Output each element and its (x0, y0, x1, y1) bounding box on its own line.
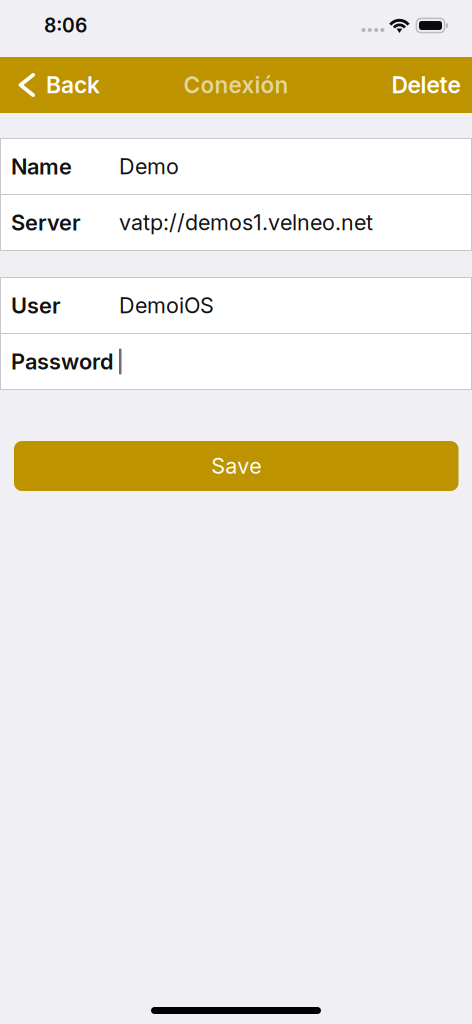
staticText: Server (11, 209, 81, 236)
button[interactable]: Save (14, 441, 458, 491)
button[interactable]: Name (0, 139, 472, 194)
staticText: Name (11, 153, 72, 180)
staticText: Demo (119, 153, 179, 179)
button[interactable]: Back (0, 57, 112, 113)
staticText: DemoiOS (119, 292, 214, 318)
staticText: Password (11, 348, 114, 375)
staticText: vatp://demos1.velneo.net (119, 209, 373, 235)
staticText: User (11, 292, 61, 319)
staticText: 8:06 (44, 14, 87, 37)
button[interactable]: Password (0, 334, 472, 389)
staticText: Conexión (183, 71, 288, 99)
button[interactable]: Server (0, 195, 472, 250)
button[interactable]: Delete (375, 57, 472, 113)
staticText: Save (211, 453, 261, 479)
staticText: Delete (391, 71, 460, 99)
staticText: Back (46, 71, 100, 99)
button[interactable]: User (0, 278, 472, 333)
